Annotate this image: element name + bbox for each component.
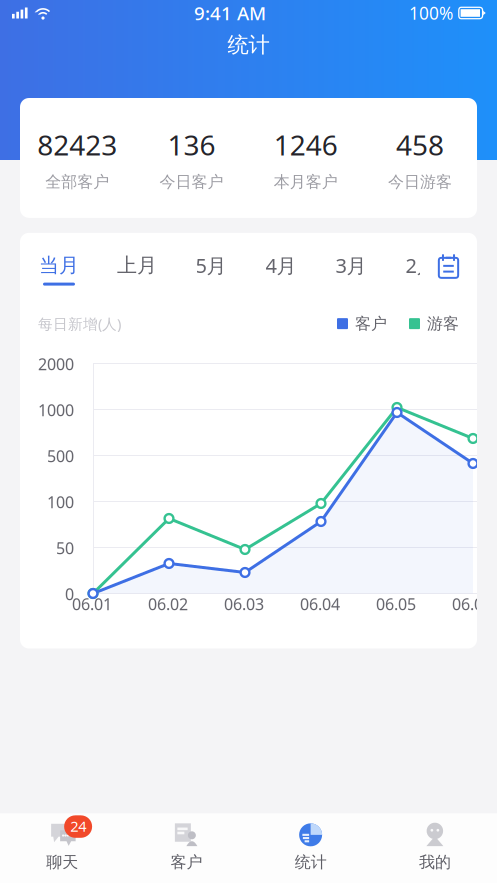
button[interactable]: 我的 xyxy=(373,823,497,872)
staticText: 游客 xyxy=(427,314,459,333)
staticText: 聊天 xyxy=(46,852,78,872)
staticText: 06.01 xyxy=(72,593,112,615)
staticText: 06.04 xyxy=(300,593,340,615)
staticText: 06.02 xyxy=(148,593,188,615)
staticText: 136 xyxy=(167,126,215,163)
staticText: 9:41 AM xyxy=(194,1,266,25)
button[interactable]: 统计 xyxy=(0,26,497,64)
button[interactable]: 当月 xyxy=(20,253,98,286)
staticText: 本月客户 xyxy=(274,172,338,192)
staticText: 100 xyxy=(47,491,74,513)
staticText: 100% xyxy=(409,1,453,24)
button[interactable]: 24 xyxy=(0,823,124,872)
staticText: 24 xyxy=(70,816,86,836)
staticText: 今日游客 xyxy=(388,172,452,192)
staticText: 82423 xyxy=(37,126,117,163)
button[interactable]: 客户 xyxy=(124,823,248,872)
staticText: 0 xyxy=(65,583,74,605)
staticText: 1000 xyxy=(38,399,74,421)
staticText: 我的 xyxy=(419,852,451,872)
staticText: 统计 xyxy=(295,852,327,872)
staticText: 全部客户 xyxy=(45,172,109,192)
button[interactable]: 上月 xyxy=(98,253,176,286)
staticText: 统计 xyxy=(227,32,269,58)
staticText: 客户 xyxy=(170,852,202,872)
button[interactable]: 5月 xyxy=(176,252,246,287)
staticText: 当月 xyxy=(39,253,79,278)
staticText: 458 xyxy=(396,126,444,163)
staticText: 1246 xyxy=(274,126,338,163)
staticText: 3月 xyxy=(335,252,366,279)
button[interactable]: 2月 xyxy=(386,252,456,287)
staticText: 客户 xyxy=(355,314,387,333)
button[interactable]: 136 xyxy=(134,126,248,192)
button[interactable]: 1246 xyxy=(248,126,363,192)
staticText: 今日客户 xyxy=(159,172,223,192)
button[interactable]: 3月 xyxy=(316,252,386,287)
staticText: 06.03 xyxy=(224,593,264,615)
staticText: 06.05 xyxy=(376,593,416,615)
staticText: 2月 xyxy=(405,252,436,279)
button[interactable]: 4月 xyxy=(246,252,316,287)
staticText: 2000 xyxy=(38,353,74,375)
button[interactable]: 82423 xyxy=(20,126,134,192)
button[interactable]: 458 xyxy=(363,126,477,192)
staticText: 500 xyxy=(47,445,74,467)
staticText: 上月 xyxy=(117,253,157,278)
staticText: 每日新增(人) xyxy=(38,314,121,333)
staticText: 50 xyxy=(56,537,74,559)
button[interactable]: 选择月份 xyxy=(420,249,477,290)
staticText: 06.06 xyxy=(452,593,492,615)
staticText: 5月 xyxy=(195,252,226,279)
button[interactable]: 统计 xyxy=(248,823,373,872)
staticText: 4月 xyxy=(265,252,296,279)
